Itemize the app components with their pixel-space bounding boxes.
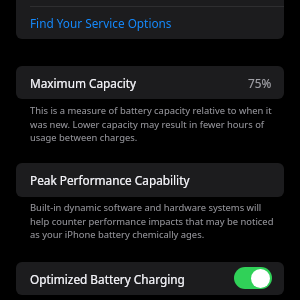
staticText: Maximum Capacity bbox=[30, 75, 136, 91]
button[interactable]: Optimized Battery Charging bbox=[234, 267, 272, 289]
button[interactable]: Peak Performance Capability bbox=[16, 163, 284, 197]
staticText: Optimized Battery Charging bbox=[30, 271, 185, 287]
staticText: 75% bbox=[248, 75, 272, 91]
staticText: Find Your Service Options bbox=[30, 15, 172, 31]
button[interactable]: Find Your Service Options bbox=[16, 6, 284, 39]
staticText: Built-in dynamic software and hardware s… bbox=[30, 201, 274, 240]
button[interactable]: Maximum Capacity bbox=[16, 66, 284, 99]
button[interactable]: Optimized Battery Charging bbox=[16, 262, 284, 295]
staticText: Peak Performance Capability bbox=[30, 172, 190, 188]
staticText: This is a measure of battery capacity re… bbox=[30, 104, 274, 143]
